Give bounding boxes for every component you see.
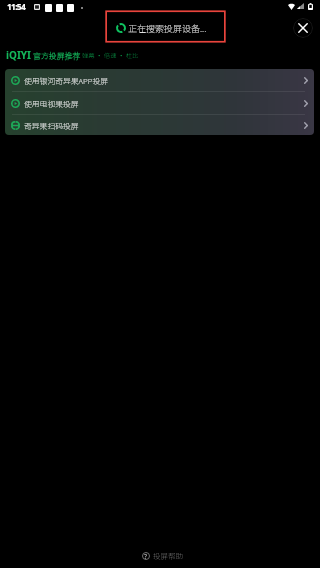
staticText: 使用银河奇异果APP投屏	[24, 75, 108, 86]
button[interactable]: ?	[140, 548, 185, 563]
staticText: 使用电视果投屏	[24, 98, 79, 109]
button[interactable]: 使用电视果投屏	[5, 92, 314, 114]
staticText: 奇异果扫码投屏	[24, 120, 79, 131]
staticText: 弹幕 · 倍速 · 杜比	[82, 51, 139, 60]
staticText: 11:54	[7, 1, 26, 12]
staticText: 官方投屏推荐	[33, 50, 81, 61]
staticText: iQIYI	[6, 48, 31, 62]
button[interactable]: 使用银河奇异果APP投屏	[5, 69, 314, 91]
button[interactable]: 关闭	[293, 18, 313, 38]
staticText: 正在搜索投屏设备...	[128, 22, 207, 35]
staticText: 投屏帮助	[153, 550, 183, 561]
button[interactable]: 奇异果扫码投屏	[5, 115, 314, 135]
staticText: ?	[144, 552, 148, 560]
